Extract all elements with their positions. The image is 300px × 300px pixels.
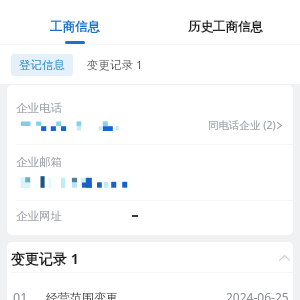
staticText: 变更记录 1 [11,249,79,268]
staticText: 经营范围变更 [46,290,118,300]
staticText: 01 [13,289,28,300]
staticText: 同电话企业 (2) [208,118,276,132]
staticText: 2024-06-25 [226,289,289,300]
button[interactable]: 工商信息 [0,0,150,44]
staticText: 变更记录 1 [87,57,143,73]
button[interactable]: 01 [7,273,293,300]
staticText: 登记信息 [19,58,65,72]
button[interactable]: 历史工商信息 [150,0,300,44]
button[interactable]: 变更记录 1 [79,54,151,76]
staticText: 企业电话 [16,101,62,115]
staticText: 企业邮箱 [16,155,62,169]
button[interactable]: 同电话企业 (2) [208,118,293,132]
staticText: 企业网址 [16,209,62,223]
button[interactable]: 收起 [275,249,293,267]
staticText: 工商信息 [50,19,100,35]
staticText: 历史工商信息 [188,19,263,35]
button[interactable]: 登记信息 [11,54,73,76]
